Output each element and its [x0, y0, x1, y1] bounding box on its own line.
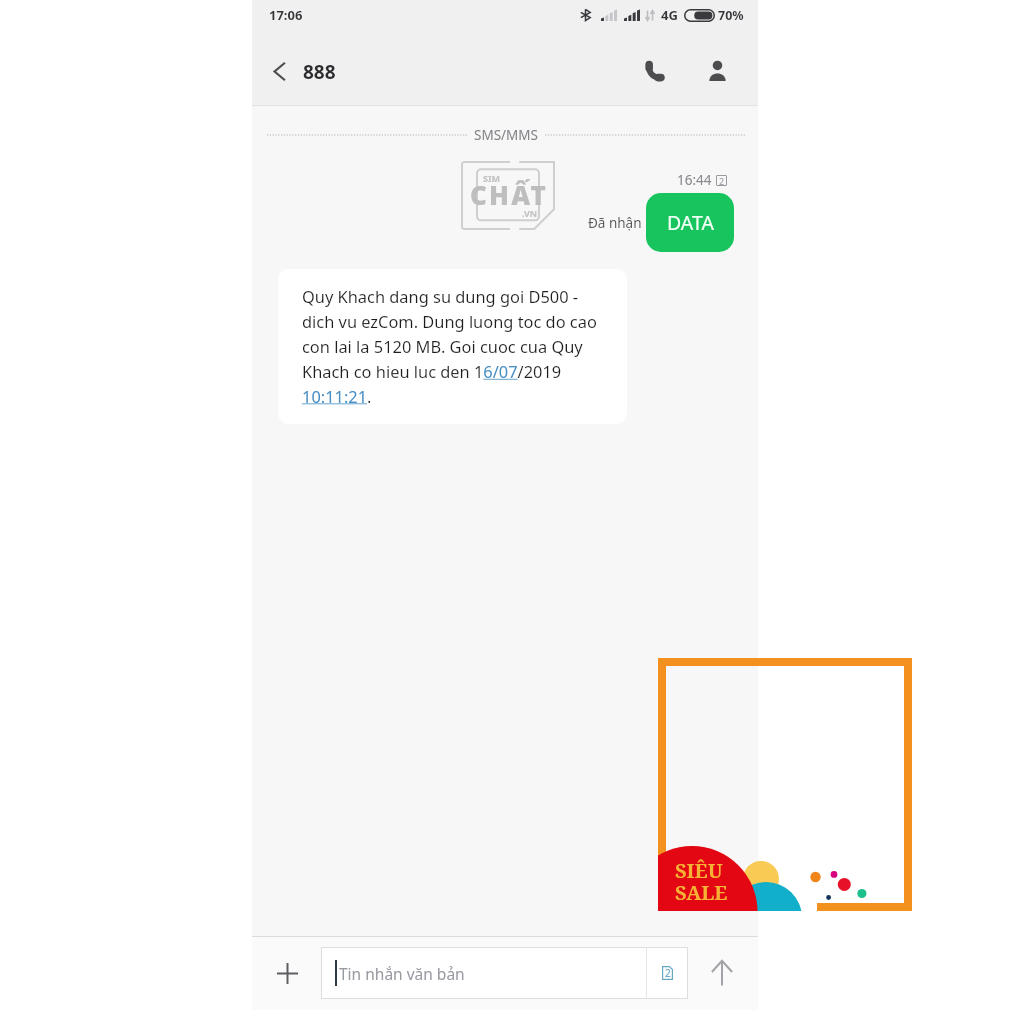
button[interactable]: Tin nhắn văn bản [321, 947, 688, 999]
staticText: 4G [661, 6, 678, 24]
button[interactable]: Quy Khach dang su dung goi D500 - dich v… [278, 269, 627, 424]
staticText: Tin nhắn văn bản [339, 963, 465, 984]
button[interactable]: Send [700, 951, 744, 995]
staticText: 16:44 [677, 171, 712, 189]
staticText: SIM [483, 172, 500, 184]
staticText: Đã nhận [588, 214, 642, 232]
button[interactable]: Siêu Sale promotion [658, 658, 912, 911]
button[interactable]: Back [258, 50, 300, 92]
button[interactable]: Call [633, 50, 675, 92]
staticText: DATA [667, 209, 714, 236]
staticText: CHẤT [470, 177, 549, 212]
staticText: 2 [719, 175, 725, 186]
staticText: Quy Khach dang su dung goi D500 - dich v… [302, 285, 613, 407]
button[interactable]: DATA [646, 193, 734, 252]
staticText: SMS/MMS [474, 126, 538, 144]
staticText: 888 [303, 59, 336, 85]
button[interactable]: Contact details [696, 49, 738, 91]
staticText: 2 [665, 966, 671, 980]
staticText: SALE [675, 879, 728, 906]
staticText: SIÊU [675, 857, 723, 884]
button[interactable]: Add attachment [265, 951, 309, 995]
staticText: 17:06 [269, 6, 303, 24]
staticText: 70% [718, 7, 744, 24]
staticText: .VN [522, 207, 538, 219]
